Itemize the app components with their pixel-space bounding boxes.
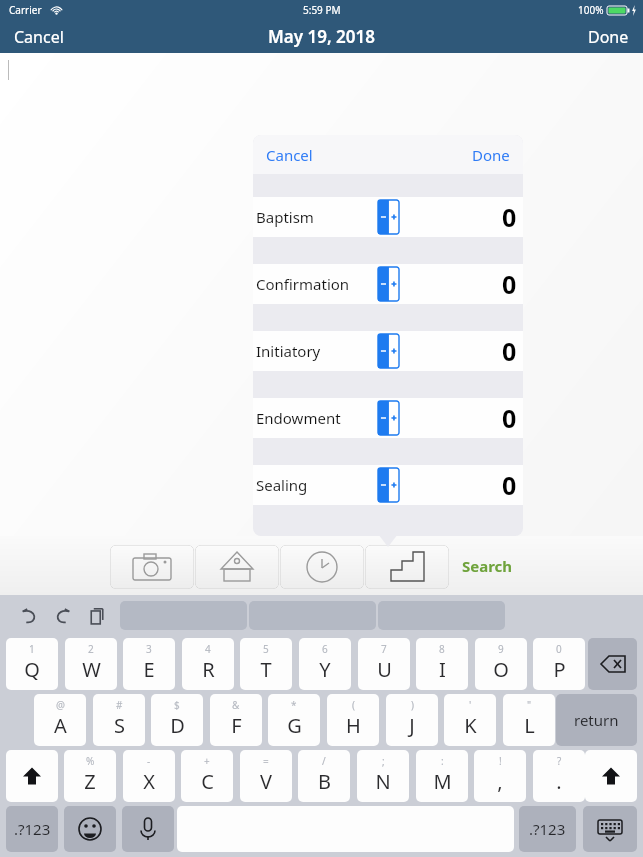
- button[interactable]: 7: [358, 638, 410, 690]
- button[interactable]: Paste: [82, 601, 112, 631]
- staticText: 8: [439, 642, 445, 656]
- staticText: 2: [88, 642, 94, 656]
- button[interactable]: Shift: [585, 750, 637, 802]
- staticText: Search: [462, 556, 513, 576]
- button[interactable]: .?123: [6, 806, 58, 852]
- staticText: .?123: [529, 819, 566, 839]
- button[interactable]: .?123: [519, 806, 576, 852]
- staticText: Done: [588, 26, 629, 48]
- staticText: +: [204, 754, 210, 768]
- staticText: Q: [24, 656, 40, 683]
- staticText: K: [464, 712, 477, 739]
- button[interactable]: &: [210, 694, 262, 746]
- button[interactable]: Confirmation: [253, 264, 523, 304]
- button[interactable]: 3: [123, 638, 175, 690]
- button[interactable]: =: [240, 750, 292, 802]
- button[interactable]: Steps: [365, 545, 449, 589]
- button[interactable]: 1: [6, 638, 58, 690]
- button[interactable]: Cancel: [253, 139, 326, 171]
- staticText: *: [291, 698, 297, 712]
- button[interactable]: 6: [299, 638, 351, 690]
- staticText: 0: [556, 642, 562, 656]
- button[interactable]: 0: [533, 638, 585, 690]
- staticText: @: [56, 698, 65, 712]
- button[interactable]: ;: [357, 750, 409, 802]
- staticText: 5: [263, 642, 269, 656]
- button[interactable]: ': [444, 694, 496, 746]
- staticText: May 19, 2018: [268, 25, 375, 48]
- button[interactable]: Done: [459, 139, 523, 171]
- button[interactable]: -: [123, 750, 175, 802]
- button[interactable]: +: [181, 750, 233, 802]
- button[interactable]: Hide keyboard: [583, 806, 637, 852]
- button[interactable]: Emoji: [64, 806, 116, 852]
- staticText: ,: [497, 768, 503, 795]
- staticText: Carrier: [9, 3, 42, 17]
- button[interactable]: Clock: [280, 545, 364, 589]
- button[interactable]: #: [93, 694, 145, 746]
- staticText: M: [433, 768, 452, 795]
- button[interactable]: Temple: [195, 545, 279, 589]
- button[interactable]: @: [34, 694, 86, 746]
- button[interactable]: %: [64, 750, 116, 802]
- staticText: 7: [381, 642, 387, 656]
- staticText: 0: [502, 200, 517, 234]
- button[interactable]: Baptism: [253, 197, 523, 237]
- button[interactable]: Done: [574, 21, 643, 53]
- staticText: P: [553, 656, 566, 683]
- button[interactable]: return: [556, 694, 637, 746]
- button[interactable]: Initiatory: [253, 331, 523, 371]
- button[interactable]: 2: [65, 638, 117, 690]
- button[interactable]: $: [151, 694, 203, 746]
- staticText: 0: [502, 468, 517, 502]
- staticText: S: [114, 712, 125, 739]
- button[interactable]: Sealing: [253, 465, 523, 505]
- staticText: D: [170, 712, 185, 739]
- staticText: A: [54, 712, 67, 739]
- button[interactable]: Endowment: [253, 398, 523, 438]
- staticText: J: [409, 712, 415, 739]
- button[interactable]: ?: [533, 750, 585, 802]
- staticText: #: [116, 698, 123, 712]
- button[interactable]: 8: [416, 638, 468, 690]
- staticText: V: [260, 768, 272, 795]
- staticText: 6: [322, 642, 328, 656]
- button[interactable]: :: [416, 750, 468, 802]
- button[interactable]: *: [268, 694, 320, 746]
- staticText: .: [556, 768, 562, 795]
- staticText: 1: [29, 642, 35, 656]
- staticText: /: [322, 754, 326, 768]
- staticText: I: [439, 656, 446, 683]
- button[interactable]: (: [327, 694, 379, 746]
- staticText: -: [147, 754, 151, 768]
- staticText: N: [375, 768, 391, 795]
- staticText: 5:59 PM: [303, 3, 341, 17]
- button[interactable]: 5: [240, 638, 292, 690]
- staticText: 0: [502, 267, 517, 301]
- button[interactable]: Dictation: [122, 806, 174, 852]
- staticText: U: [377, 656, 392, 683]
- staticText: 9: [498, 642, 504, 656]
- button[interactable]: Cancel: [0, 21, 78, 53]
- button[interactable]: Shift: [6, 750, 58, 802]
- button[interactable]: ": [503, 694, 555, 746]
- button[interactable]: Backspace: [588, 638, 637, 690]
- button[interactable]: Camera: [110, 545, 194, 589]
- button[interactable]: 9: [475, 638, 527, 690]
- staticText: :: [441, 754, 444, 768]
- staticText: O: [493, 656, 509, 683]
- button[interactable]: !: [474, 750, 526, 802]
- staticText: ): [411, 698, 414, 712]
- button[interactable]: /: [298, 750, 350, 802]
- button[interactable]: ): [386, 694, 438, 746]
- button[interactable]: Search: [462, 556, 513, 576]
- button[interactable]: 4: [182, 638, 234, 690]
- staticText: 0: [502, 401, 517, 435]
- staticText: 100%: [578, 3, 604, 17]
- button[interactable]: Redo: [48, 601, 78, 631]
- button[interactable]: Undo: [14, 601, 44, 631]
